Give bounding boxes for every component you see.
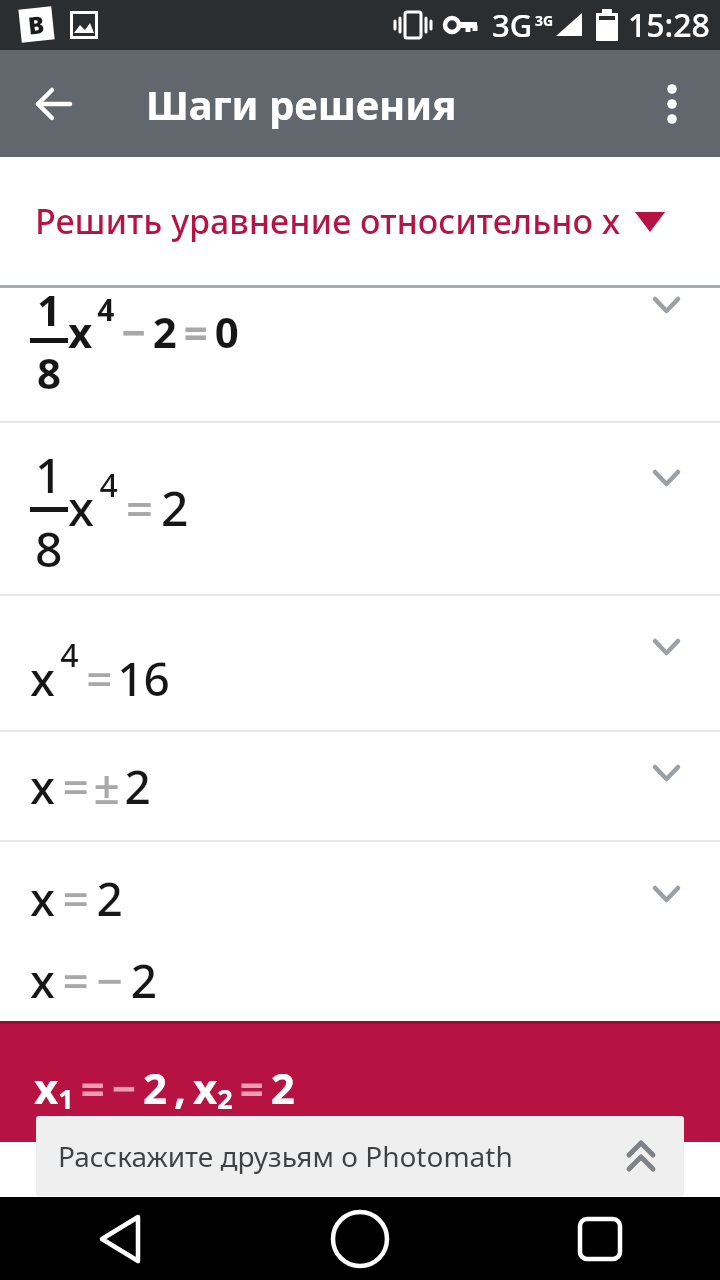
staticText: 8	[35, 516, 63, 581]
button[interactable]: x = ± 2	[0, 732, 720, 840]
staticText: x = ± 2	[30, 755, 151, 818]
staticText: x = 2	[30, 867, 123, 930]
button[interactable]	[240, 1197, 480, 1280]
staticText: 1	[35, 442, 63, 507]
staticText: x = − 2	[30, 949, 157, 1012]
staticText: x 4 = 16	[30, 633, 170, 710]
staticText: Решить уравнение относительно x	[35, 198, 621, 244]
button[interactable]: 1	[0, 423, 720, 594]
staticText: 3G	[492, 4, 533, 46]
button[interactable]: 1	[0, 288, 720, 421]
button[interactable]: x = 2	[0, 842, 720, 1021]
staticText: Расскажите друзьям о Photomath	[58, 1137, 513, 1175]
button[interactable]	[0, 1197, 240, 1280]
button[interactable]: x 4 = 16	[0, 596, 720, 730]
staticText: 15:28	[628, 3, 710, 47]
button[interactable]	[652, 84, 692, 124]
staticText: x 4 − 2 = 0	[68, 289, 239, 361]
staticText: Шаги решения	[146, 77, 457, 131]
button[interactable]: Расскажите друзьям о Photomath	[36, 1116, 684, 1196]
button[interactable]	[26, 76, 82, 132]
staticText: 3G	[535, 11, 554, 30]
staticText: x 4 = 2	[68, 463, 189, 540]
staticText: B	[26, 7, 47, 42]
button[interactable]	[480, 1197, 720, 1280]
staticText: 1	[37, 281, 62, 338]
staticText: 8	[37, 344, 62, 401]
staticText: x1 = − 2 , x2 = 2	[34, 1059, 295, 1117]
button[interactable]: Решить уравнение относительно x	[0, 157, 720, 285]
